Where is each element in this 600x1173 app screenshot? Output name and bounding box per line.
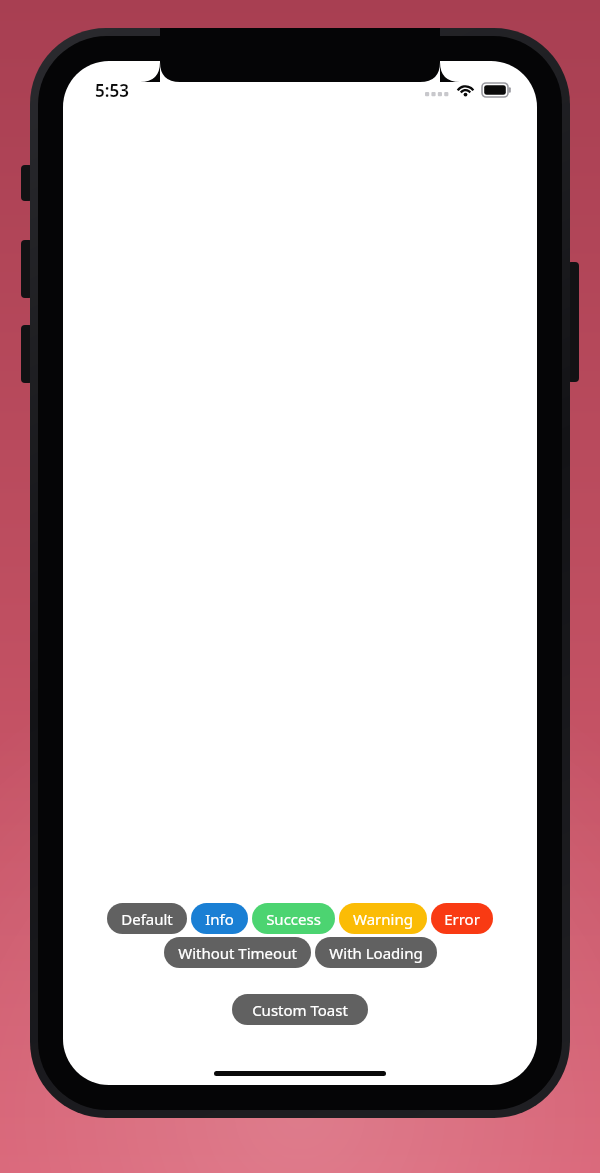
button[interactable]: Default [107, 903, 187, 934]
button[interactable]: Without Timeout [164, 937, 311, 968]
staticText: Default [121, 909, 173, 929]
staticText: Success [266, 909, 321, 929]
staticText: Without Timeout [178, 943, 297, 963]
staticText: Warning [353, 909, 413, 929]
staticText: Custom Toast [252, 1000, 348, 1020]
staticText: Error [444, 909, 480, 929]
button[interactable]: Custom Toast [232, 994, 368, 1025]
button[interactable]: Error [431, 903, 493, 934]
staticText: Info [205, 909, 234, 929]
button[interactable]: Success [252, 903, 335, 934]
button[interactable]: Warning [339, 903, 427, 934]
button[interactable]: With Loading [315, 937, 437, 968]
staticText: With Loading [329, 943, 423, 963]
button[interactable]: Info [191, 903, 248, 934]
staticText: 5:53 [95, 79, 129, 102]
